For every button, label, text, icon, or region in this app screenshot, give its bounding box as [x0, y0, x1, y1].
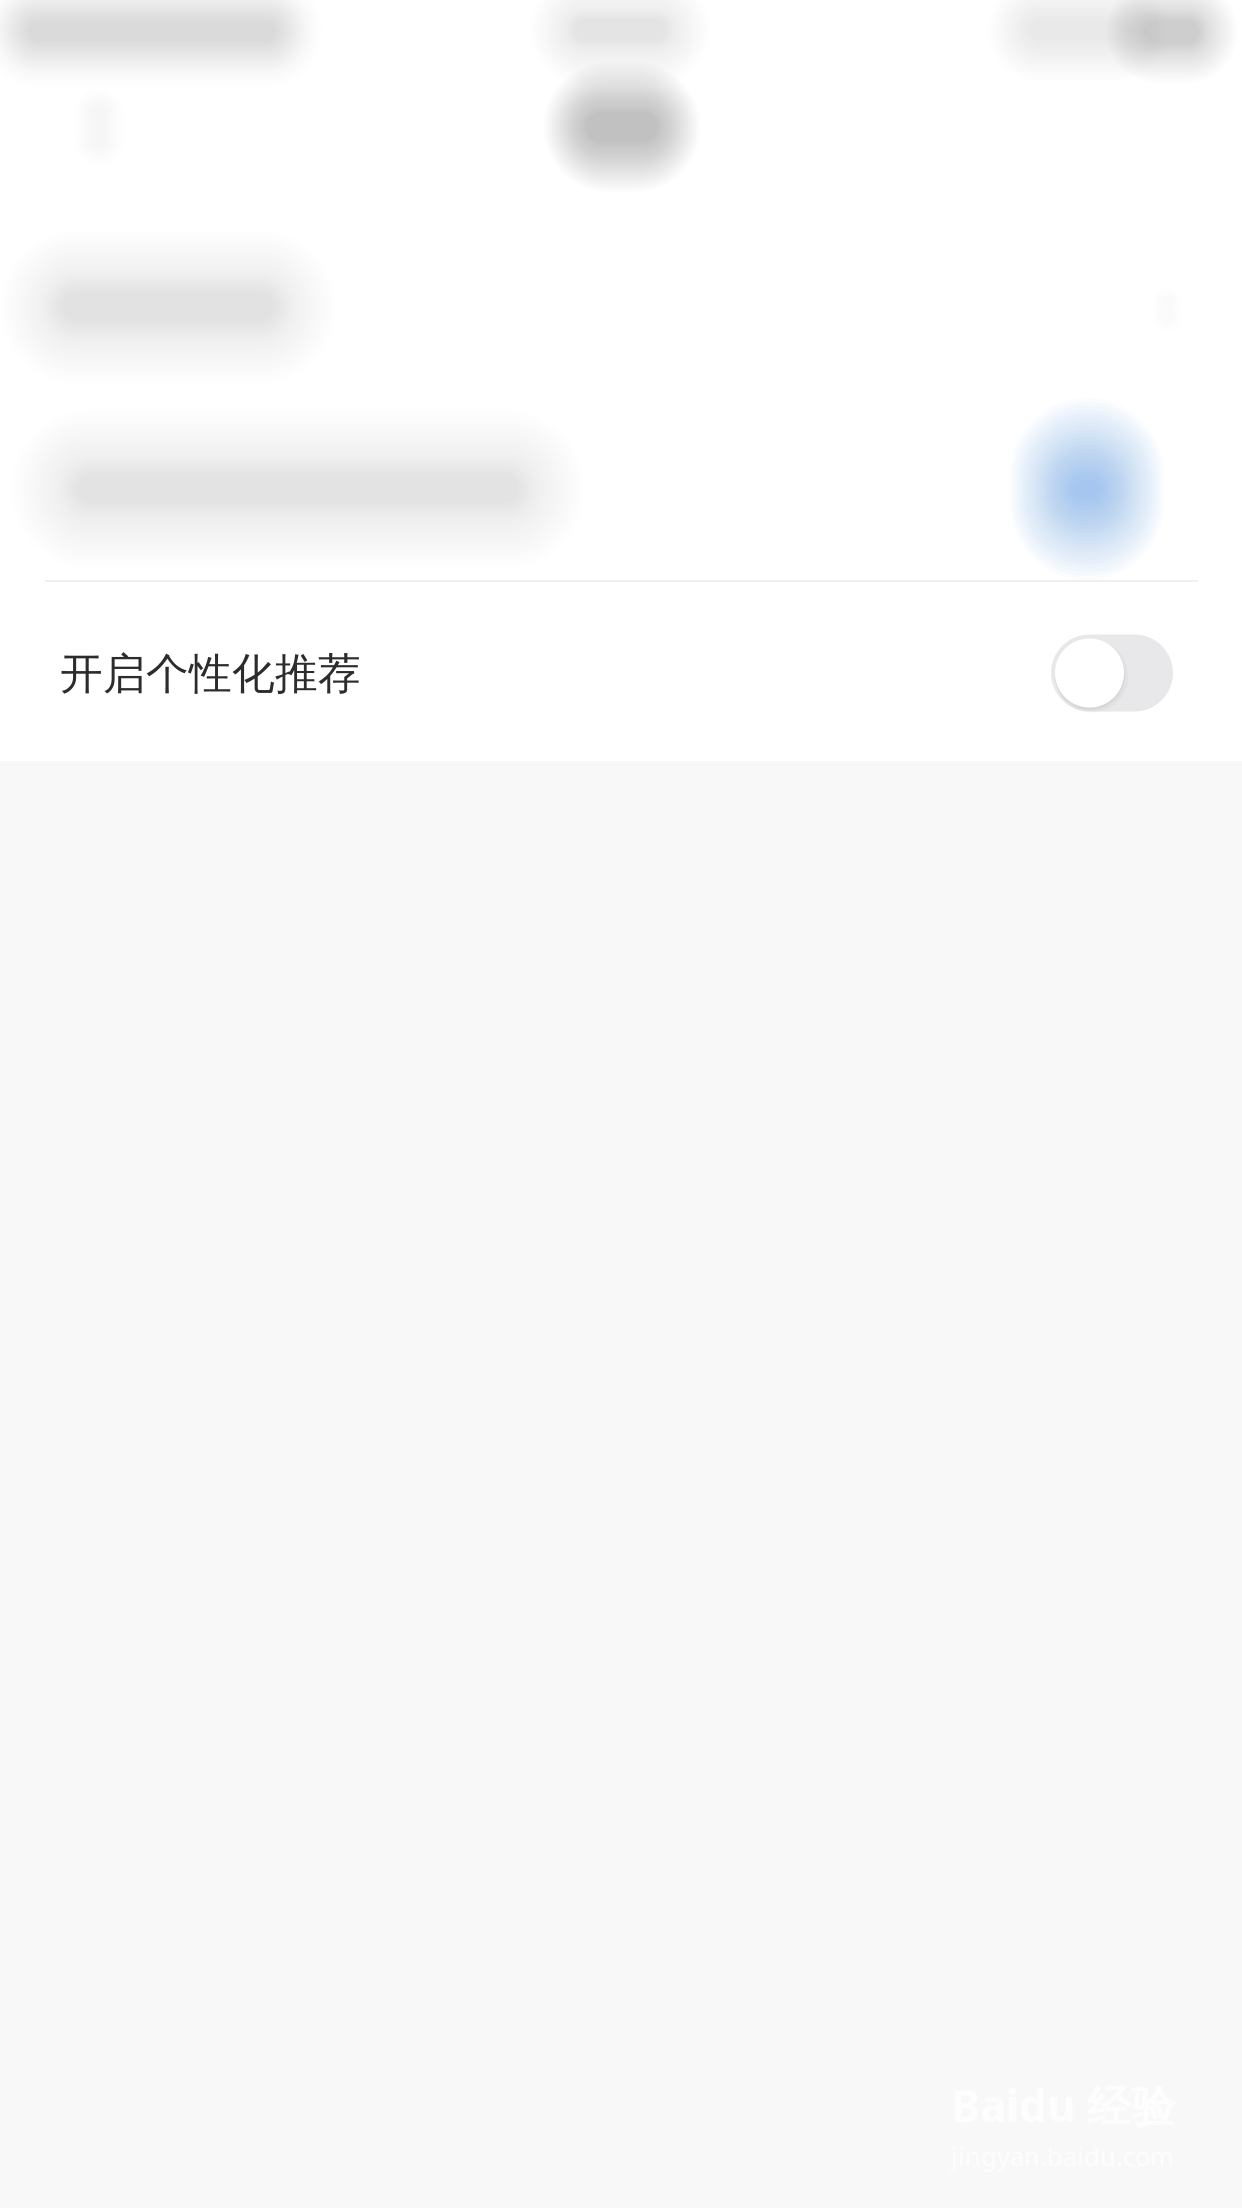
button[interactable]: 开启个性化推荐 — [0, 582, 1242, 760]
staticText: 开启个性化推荐 — [60, 648, 361, 700]
